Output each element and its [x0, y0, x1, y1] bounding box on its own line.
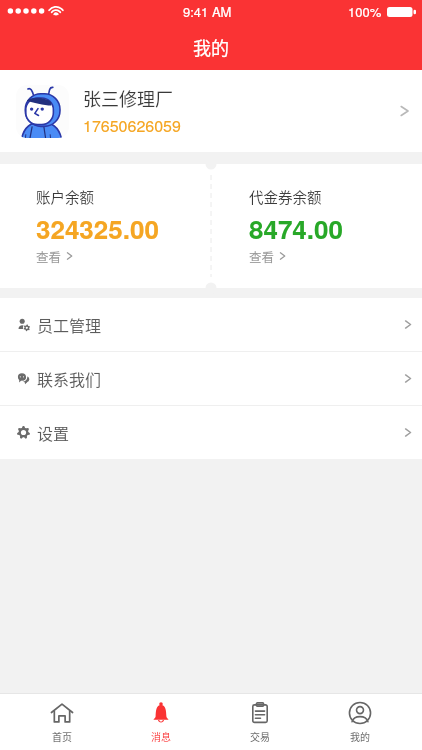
button[interactable]: 交易 — [210, 694, 310, 750]
staticText: 消息 — [151, 729, 171, 743]
staticText: 账户余额 — [36, 186, 94, 207]
staticText: 查看 — [36, 247, 62, 265]
staticText: 我的 — [193, 34, 229, 60]
button[interactable]: 查看 — [249, 247, 286, 265]
staticText: 100% — [348, 2, 382, 21]
staticText: 张三修理厂 — [83, 85, 173, 111]
staticText: 8474.00 — [249, 210, 343, 247]
staticText: 17650626059 — [83, 114, 181, 137]
staticText: 首页 — [52, 729, 72, 743]
button[interactable]: 张三修理厂 — [0, 70, 422, 152]
button[interactable]: 首页 — [12, 694, 111, 750]
staticText: 查看 — [249, 247, 275, 265]
staticText: 324325.00 — [36, 210, 159, 247]
button[interactable]: 员工管理 — [0, 298, 422, 351]
staticText: 联系我们 — [37, 367, 102, 390]
button[interactable]: 查看 — [36, 247, 73, 265]
staticText: 9:41 AM — [183, 2, 232, 21]
staticText: 设置 — [37, 421, 70, 444]
button[interactable]: 消息 — [111, 694, 210, 750]
button[interactable]: 我的 — [310, 694, 410, 750]
button[interactable]: 设置 — [0, 406, 422, 459]
staticText: 代金券余额 — [249, 186, 322, 207]
staticText: 员工管理 — [37, 313, 102, 336]
staticText: 交易 — [250, 729, 270, 743]
button[interactable]: 联系我们 — [0, 352, 422, 405]
staticText: 我的 — [350, 729, 370, 743]
